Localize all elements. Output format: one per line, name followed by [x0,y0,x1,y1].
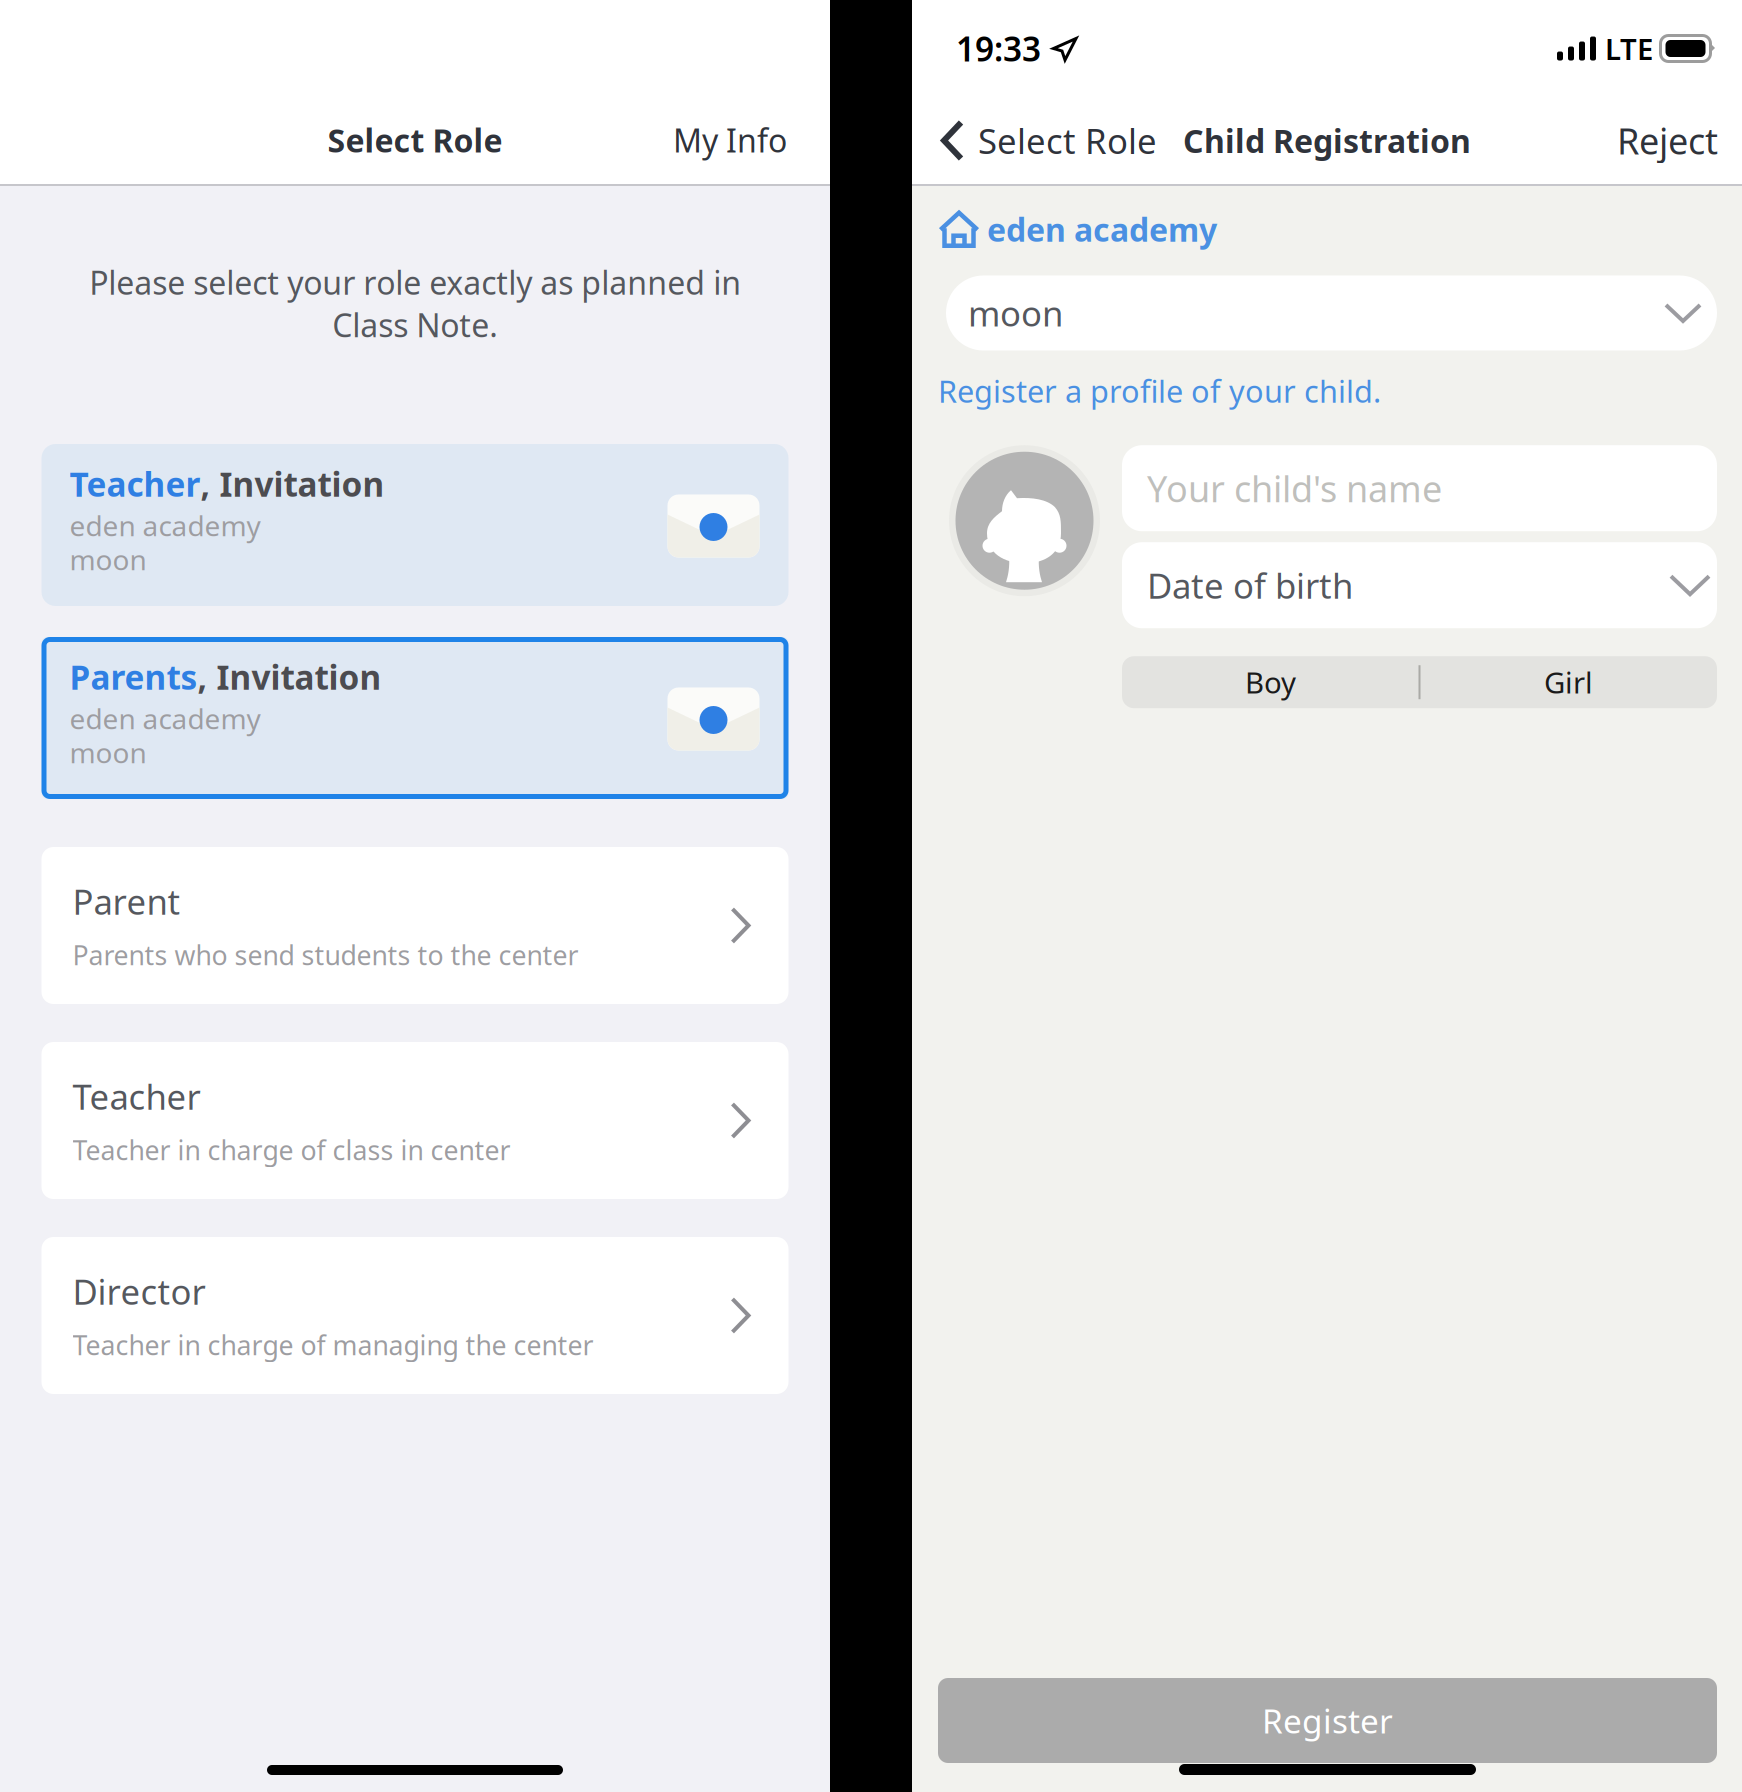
staticText: Date of birth [1147,562,1353,608]
staticText: eden academy [69,507,260,544]
button[interactable]: Girl [1420,656,1716,708]
button[interactable]: Back to Select Role [941,105,1157,175]
button[interactable]: Date of birth [1122,542,1717,628]
staticText: moon [69,734,146,771]
staticText: moon [69,541,146,578]
staticText: Please select your role exactly as plann… [89,261,741,346]
button[interactable]: Reject [1617,105,1718,176]
button[interactable]: My Info [655,105,805,175]
staticText: Register [1262,1698,1393,1743]
staticText: Teacher [72,1073,200,1119]
staticText: Parents who send students to the center [72,937,578,973]
staticText: Teacher [69,462,200,506]
staticText: Select Role [978,117,1157,163]
button[interactable]: Director [41,1237,788,1394]
button[interactable]: Teacher [41,1042,788,1199]
button[interactable]: Parents [41,637,788,799]
staticText: Teacher in charge of managing the center [72,1327,593,1363]
staticText: Teacher in charge of class in center [72,1132,510,1168]
button[interactable]: moon [946,275,1717,350]
button[interactable]: Register [938,1678,1717,1763]
staticText: Parent [72,878,180,924]
staticText: Child Registration [1183,119,1471,162]
button[interactable]: Choose child photo [938,445,1100,596]
staticText: , Invitation [200,462,384,506]
button[interactable]: Teacher [41,444,788,606]
staticText: 19:33 [956,26,1041,71]
staticText: LTE [1605,29,1653,68]
staticText: Select Role [327,119,502,161]
staticText: Boy [1245,663,1296,702]
staticText: Girl [1544,663,1593,702]
staticText: , Invitation [197,655,381,699]
staticText: Parents [69,655,197,699]
staticText: Director [72,1268,205,1314]
staticText: Reject [1617,117,1718,164]
staticText: moon [968,290,1063,336]
staticText: Register a profile of your child. [938,370,1381,411]
staticText: Your child's name [1147,464,1442,512]
staticText: eden academy [987,208,1217,250]
staticText: My Info [673,119,787,161]
button[interactable]: Boy [1122,656,1418,708]
button[interactable]: Parent [41,847,788,1004]
button[interactable]: Your child's name [1122,445,1717,531]
staticText: eden academy [69,700,260,737]
